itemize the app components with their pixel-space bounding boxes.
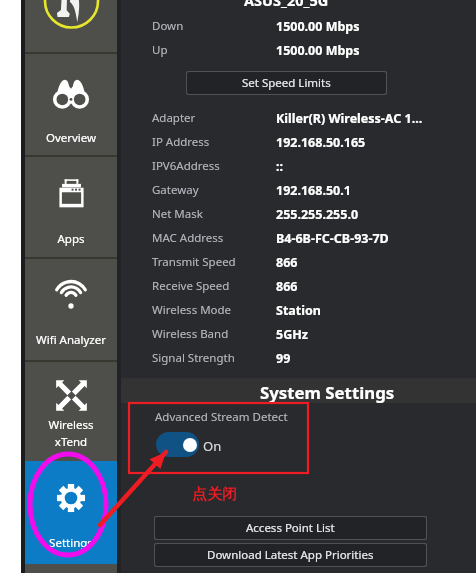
staticText: 192.168.50.1 [276, 182, 351, 199]
staticText: Gateway [152, 182, 199, 198]
button[interactable]: Wifi Analyzer [25, 259, 117, 360]
button[interactable]: Overview [25, 54, 117, 155]
staticText: Set Speed Limits [242, 75, 331, 91]
staticText: 866 [276, 278, 298, 295]
staticText: 99 [276, 350, 291, 367]
staticText: 866 [276, 254, 298, 271]
staticText: Adapter [152, 110, 196, 126]
staticText: Signal Strength [152, 350, 235, 366]
button[interactable]: Advanced Stream Detect toggle, On [156, 432, 199, 457]
staticText: Wireless Mode [152, 302, 232, 318]
button[interactable]: Wireless xTend [25, 362, 117, 461]
staticText: 192.168.50.165 [276, 134, 366, 151]
staticText: Wifi Analyzer [25, 332, 117, 348]
staticText: 5GHz [276, 326, 308, 343]
staticText: 1500.00 Mbps [276, 42, 360, 59]
staticText: On [203, 437, 222, 455]
staticText: Overview [25, 130, 117, 146]
staticText: Station [276, 302, 321, 319]
staticText: Down [152, 18, 184, 34]
staticText: Wireless xTend [25, 417, 117, 449]
staticText: Killer(R) Wireless-AC 1... [276, 110, 423, 127]
staticText: IP Address [152, 134, 210, 150]
staticText: Up [152, 42, 168, 58]
staticText: IPV6Address [152, 158, 220, 174]
staticText: :: [276, 158, 284, 175]
staticText: Download Latest App Priorities [207, 547, 374, 563]
button[interactable]: Apps [25, 157, 117, 257]
staticText: Access Point List [246, 520, 335, 536]
staticText: 255.255.255.0 [276, 206, 359, 223]
staticText: Apps [25, 231, 117, 247]
staticText: Advanced Stream Detect [155, 409, 288, 425]
button[interactable]: Set Speed Limits [187, 72, 386, 94]
staticText: Net Mask [152, 206, 203, 222]
staticText: Receive Speed [152, 278, 230, 294]
staticText: Transmit Speed [152, 254, 236, 270]
staticText: MAC Address [152, 230, 224, 246]
staticText: 点关闭 [192, 485, 237, 504]
staticText: Settings [25, 535, 117, 551]
button[interactable]: Access Point List [155, 517, 426, 539]
staticText: System Settings [260, 381, 395, 404]
staticText: ASUS_20_5G [244, 0, 329, 10]
button[interactable]: Logo [25, 0, 117, 52]
staticText: Wireless Band [152, 326, 229, 342]
button[interactable]: Settings [25, 461, 117, 564]
button[interactable]: Download Latest App Priorities [155, 544, 426, 566]
staticText: B4-6B-FC-CB-93-7D [276, 230, 389, 247]
staticText: 1500.00 Mbps [276, 18, 360, 35]
